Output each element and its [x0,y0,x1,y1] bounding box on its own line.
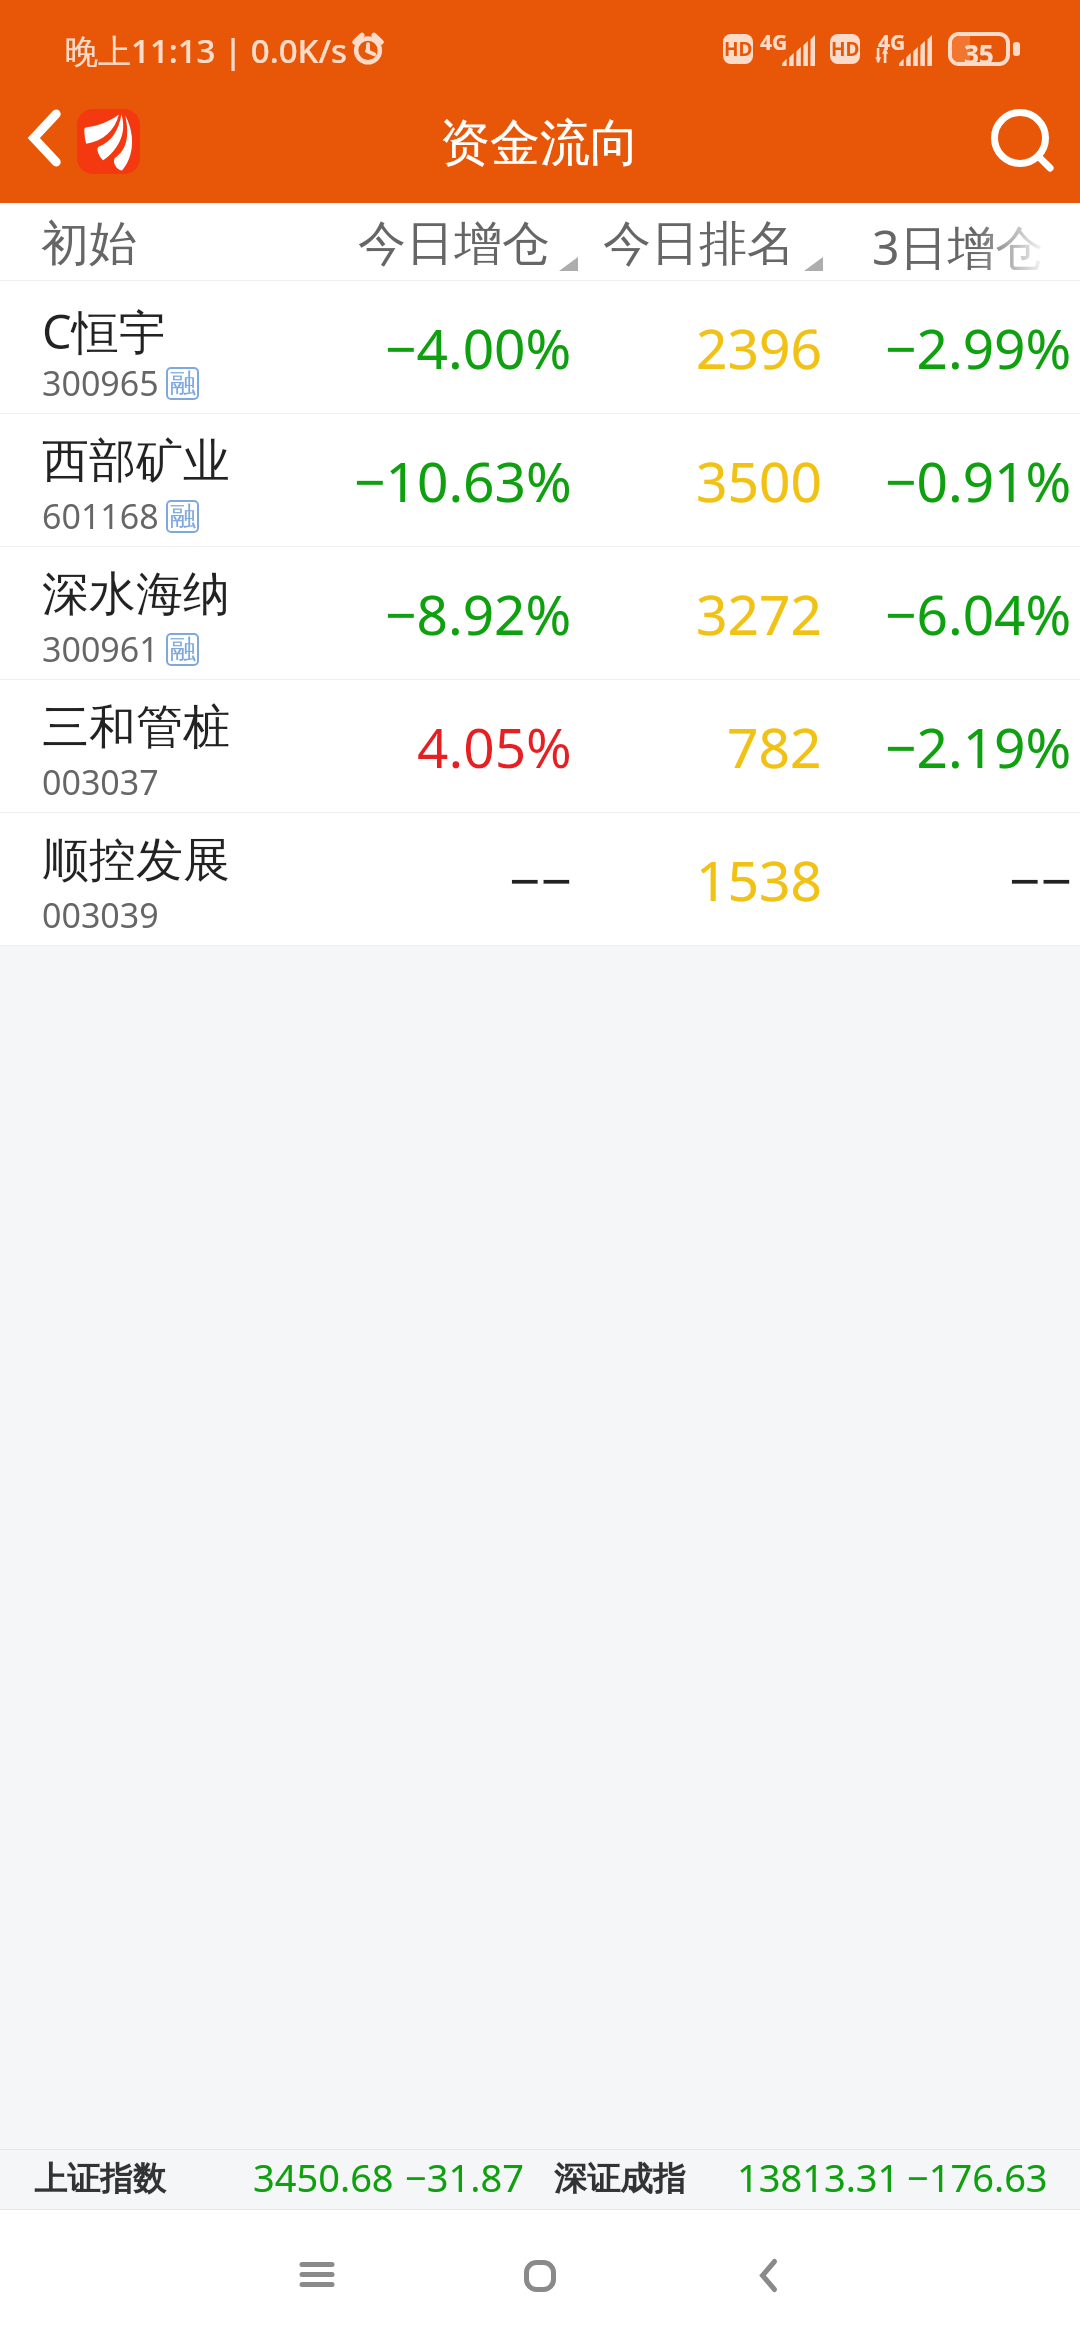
staticText: 今日排名 [603,214,795,274]
staticText: 西部矿业 [42,432,230,491]
staticText: 顺控发展 [42,831,230,890]
staticText: 晚上11:13 | 0.0K/s [65,28,348,73]
button[interactable]: 西部矿业 [0,414,1080,547]
staticText: 300961 [42,626,159,672]
button[interactable]: Eastmoney home [77,109,140,174]
button[interactable]: Recent apps [247,2210,387,2340]
staticText: 2396 [696,310,822,385]
staticText: 003039 [42,892,159,938]
staticText: 融 [170,633,196,666]
staticText: 3450.68 [253,2151,394,2203]
staticText: 3日增仓 [872,214,1044,280]
staticText: HD [724,36,753,62]
staticText: 融 [170,500,196,533]
staticText: −176.63 [907,2151,1048,2203]
staticText: 三和管桩 [42,698,230,757]
staticText: −6.04% [885,576,1072,651]
button[interactable]: Back [698,2210,838,2340]
staticText: 13813.31 [737,2151,900,2203]
staticText: 35 [964,36,994,62]
staticText: −31.87 [405,2151,524,2203]
staticText: −4.00% [385,310,572,385]
staticText: −2.99% [885,310,1072,385]
button[interactable]: 今日排名 [603,203,795,281]
staticText: 601168 [42,493,159,539]
staticText: 资金流向 [440,112,640,175]
staticText: 782 [727,709,822,784]
staticText: 今日增仓 [358,214,550,274]
staticText: −0.91% [885,443,1072,518]
staticText: 4G [760,28,788,57]
staticText: −10.63% [354,443,572,518]
button[interactable]: 今日增仓 [358,203,550,281]
button[interactable]: Back [0,100,78,203]
staticText: 深水海纳 [42,565,230,624]
staticText: HD [831,36,860,62]
staticText: −− [1009,842,1072,917]
staticText: 上证指数 [34,2158,166,2200]
staticText: −8.92% [385,576,572,651]
button[interactable]: 3日增仓 [872,203,1044,281]
staticText: 1538 [696,842,822,917]
staticText: 初始 [41,214,137,274]
staticText: 3272 [696,576,822,651]
staticText: C恒宇 [42,299,166,363]
staticText: −2.19% [885,709,1072,784]
staticText: 融 [170,367,196,400]
staticText: −− [509,842,572,917]
button[interactable]: 深水海纳 [0,547,1080,680]
button[interactable]: 三和管桩 [0,680,1080,813]
button[interactable]: 上证指数 [0,2149,1080,2210]
staticText: 3500 [696,443,822,518]
button[interactable]: 顺控发展 [0,813,1080,946]
staticText: 4G [878,28,906,57]
staticText: 003037 [42,759,159,805]
staticText: 300965 [42,360,159,406]
button[interactable]: Home [470,2210,610,2340]
staticText: 深证成指 [554,2158,686,2200]
button[interactable]: Search [964,100,1080,203]
button[interactable]: C恒宇 [0,281,1080,414]
staticText: 4.05% [417,709,572,784]
